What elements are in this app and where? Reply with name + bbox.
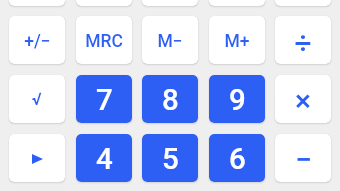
staticText: −: [295, 142, 312, 177]
button[interactable]: 5: [142, 134, 198, 182]
button[interactable]: Equals: [9, 134, 65, 182]
button[interactable]: [209, 0, 265, 6]
button[interactable]: MRC: [76, 16, 132, 64]
button[interactable]: 8: [142, 75, 198, 123]
staticText: √: [32, 89, 42, 109]
button[interactable]: 6: [209, 134, 265, 182]
button[interactable]: 4: [76, 134, 132, 182]
button[interactable]: −: [275, 134, 331, 182]
button[interactable]: [275, 0, 331, 6]
staticText: MRC: [85, 31, 123, 52]
staticText: ÷: [294, 25, 312, 60]
button[interactable]: [9, 0, 65, 6]
button[interactable]: M+: [209, 16, 265, 64]
staticText: M−: [157, 31, 183, 52]
button[interactable]: ×: [275, 75, 331, 123]
button[interactable]: [76, 0, 132, 6]
staticText: +/−: [24, 31, 51, 52]
staticText: M+: [224, 31, 250, 52]
button[interactable]: ÷: [275, 16, 331, 64]
staticText: 7: [96, 83, 113, 118]
button[interactable]: 9: [209, 75, 265, 123]
button[interactable]: M−: [142, 16, 198, 64]
staticText: 8: [162, 83, 179, 118]
staticText: 9: [229, 83, 246, 118]
staticText: 5: [162, 142, 179, 177]
button[interactable]: √: [9, 75, 65, 123]
button[interactable]: [142, 0, 198, 6]
staticText: 6: [229, 142, 246, 177]
staticText: ×: [295, 83, 311, 118]
button[interactable]: +/−: [9, 16, 65, 64]
button[interactable]: 7: [76, 75, 132, 123]
staticText: 4: [96, 142, 113, 177]
